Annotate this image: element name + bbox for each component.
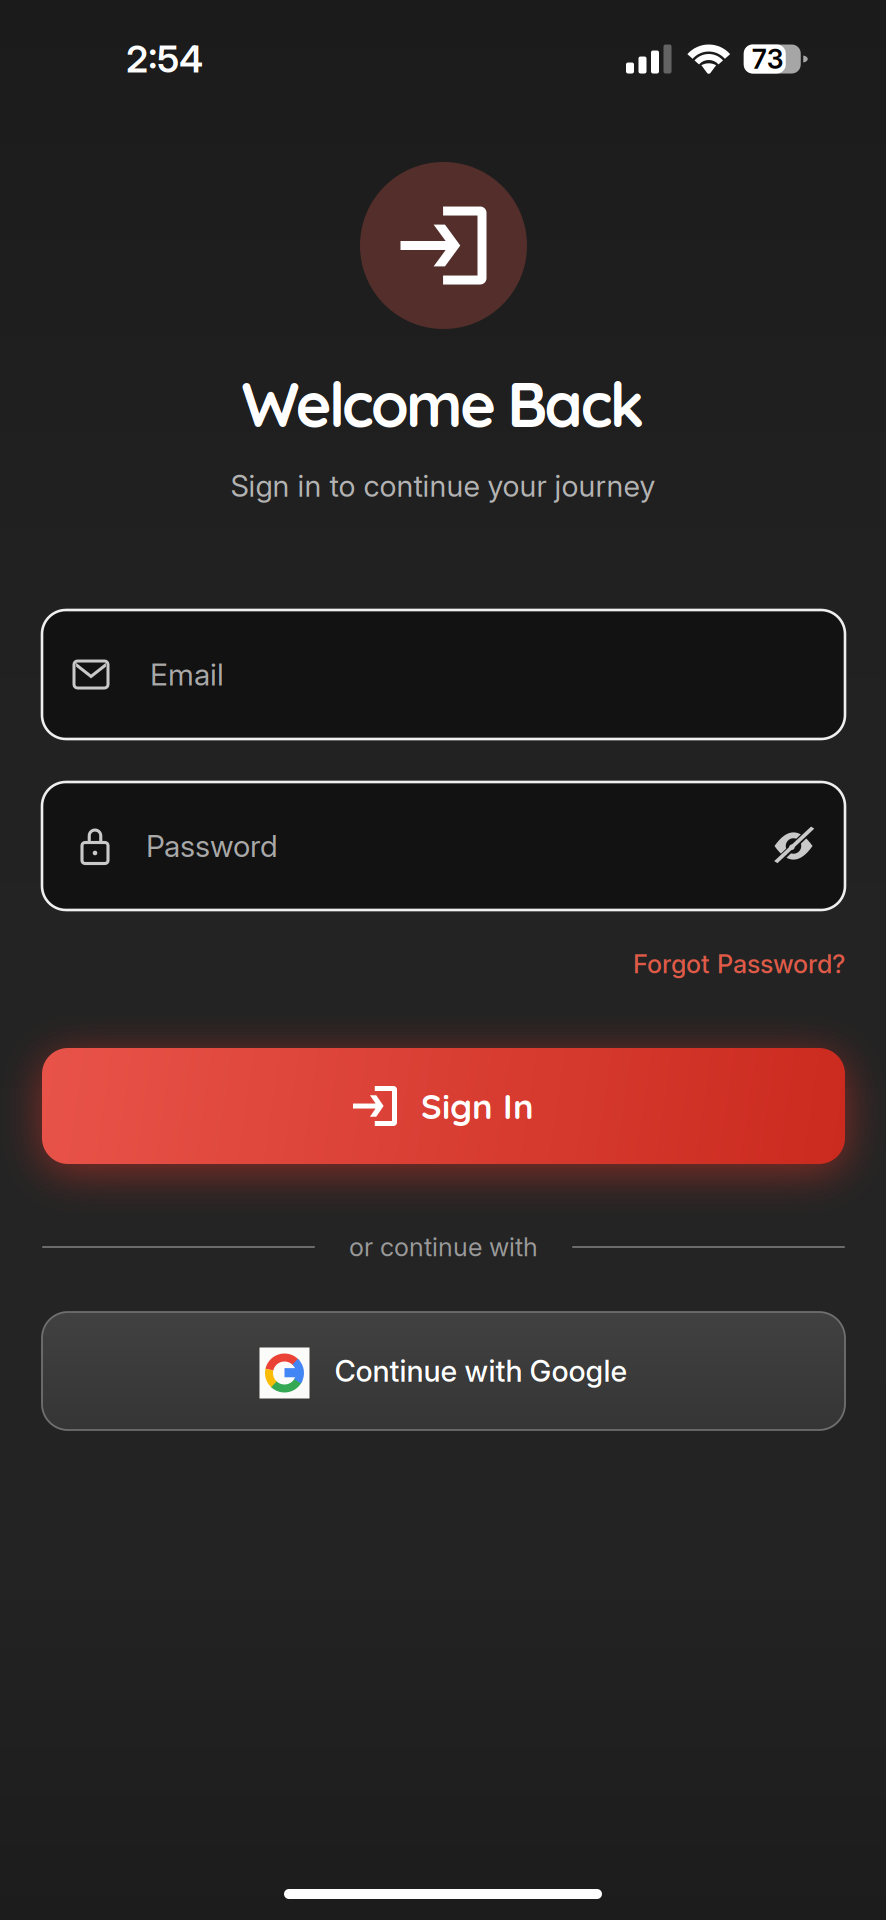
button[interactable]: Show password bbox=[774, 831, 813, 860]
staticText: Sign in to continue your journey bbox=[230, 468, 655, 504]
staticText: or continue with bbox=[349, 1232, 538, 1262]
button[interactable]: Forgot Password? bbox=[633, 949, 845, 979]
staticText: 2:54 bbox=[126, 36, 203, 82]
staticText: Email bbox=[150, 656, 224, 693]
staticText: Sign In bbox=[421, 1084, 534, 1128]
staticText: Forgot Password? bbox=[633, 949, 845, 979]
staticText: Welcome Back bbox=[241, 366, 645, 442]
button[interactable]: Sign In bbox=[42, 1048, 845, 1164]
staticText: 73 bbox=[752, 43, 784, 75]
button[interactable]: Continue with Google bbox=[42, 1312, 845, 1430]
staticText: Password bbox=[146, 828, 278, 864]
staticText: Continue with Google bbox=[334, 1353, 627, 1389]
